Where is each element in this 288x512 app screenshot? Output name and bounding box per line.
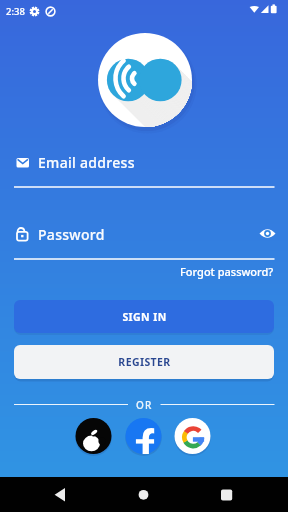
staticText: 2:38 [6,5,25,18]
button[interactable]: SIGN IN [14,300,274,333]
staticText: Email address [38,153,135,172]
staticText: SIGN IN [122,310,167,324]
staticText: OR [136,398,153,412]
button[interactable] [120,479,168,510]
button[interactable] [125,418,162,455]
button[interactable] [75,418,112,455]
staticText: REGISTER [118,355,171,369]
button[interactable] [200,479,248,510]
button[interactable] [40,479,88,510]
staticText: Password [38,225,105,244]
button[interactable]: Password [14,222,274,260]
button[interactable] [174,418,211,455]
staticText: Forgot password? [180,264,274,279]
button[interactable]: Email address [14,150,274,188]
button[interactable]: REGISTER [14,345,274,379]
button[interactable]: Forgot password? [148,263,274,279]
